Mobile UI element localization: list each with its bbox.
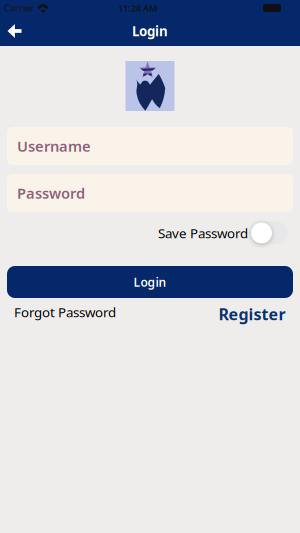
- button[interactable]: Forgot Password: [14, 303, 116, 321]
- button[interactable]: Password: [7, 174, 293, 212]
- button[interactable]: [7, 23, 21, 39]
- staticText: Login: [133, 274, 166, 290]
- staticText: Register: [218, 303, 285, 325]
- staticText: 11:28 AM: [118, 2, 158, 14]
- staticText: Save Password: [158, 224, 248, 242]
- staticText: Forgot Password: [14, 303, 116, 321]
- button[interactable]: Username: [7, 127, 293, 165]
- button[interactable]: [250, 221, 288, 244]
- staticText: Username: [17, 136, 91, 156]
- button[interactable]: Register: [218, 303, 285, 325]
- button[interactable]: Login: [7, 266, 293, 298]
- staticText: Carrier: [4, 2, 34, 14]
- staticText: Password: [17, 183, 85, 203]
- staticText: Login: [132, 22, 168, 40]
